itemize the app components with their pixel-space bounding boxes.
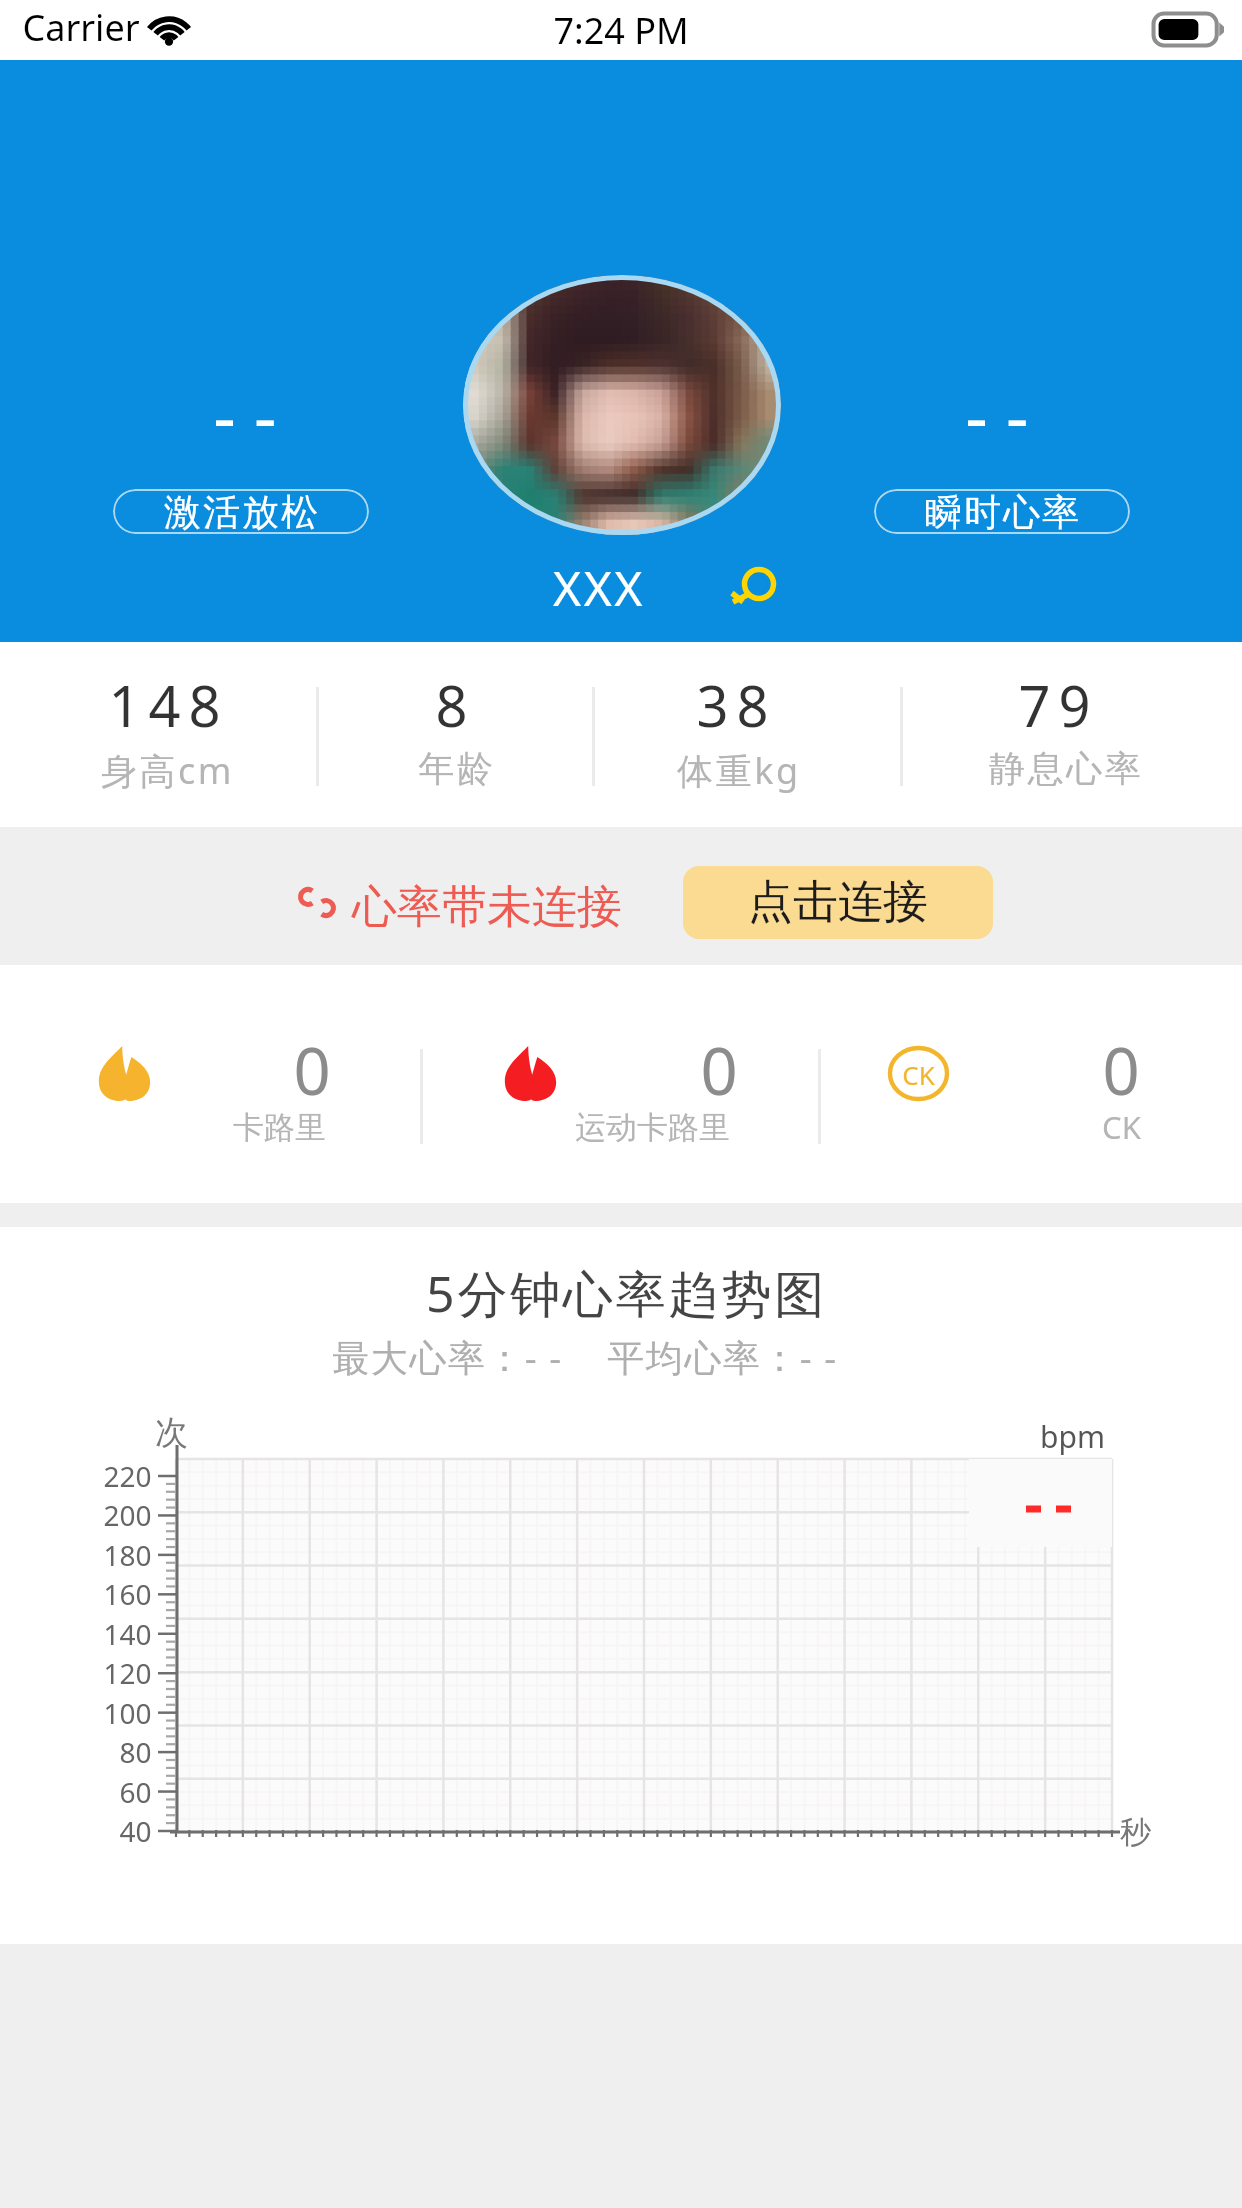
other: Wi-Fi	[146, 10, 192, 46]
staticText: 心率带未连接	[352, 879, 622, 936]
staticText: 220	[103, 1457, 152, 1495]
staticText: 148	[108, 667, 229, 743]
staticText: 秒	[1120, 1813, 1151, 1852]
other: Battery	[1152, 12, 1224, 47]
staticText: 80	[119, 1733, 152, 1771]
staticText: 120	[103, 1654, 152, 1692]
other: Gender	[726, 562, 780, 608]
button[interactable]: 瞬时心率	[874, 489, 1130, 534]
staticText: 瞬时心率	[924, 489, 1080, 534]
staticText: 40	[119, 1812, 152, 1850]
staticText: 点击连接	[748, 874, 928, 931]
button[interactable]: 点击连接	[683, 866, 993, 939]
staticText: 200	[103, 1496, 152, 1534]
other: Disconnected	[297, 885, 337, 919]
button[interactable]: 79	[914, 655, 1214, 805]
staticText: XXX	[553, 555, 645, 620]
button[interactable]: 38	[588, 655, 888, 805]
staticText: 79	[1018, 667, 1099, 743]
button[interactable]: 148	[16, 655, 316, 805]
staticText: 180	[103, 1536, 152, 1574]
staticText: 卡路里	[233, 1108, 326, 1147]
staticText: - -	[965, 367, 1029, 462]
staticText: Carrier	[22, 3, 140, 52]
button[interactable]: Profile photo	[463, 275, 781, 535]
staticText: 0	[700, 1026, 738, 1115]
staticText: 100	[103, 1694, 152, 1732]
staticText: - -	[213, 367, 277, 462]
staticText: 身高cm	[101, 746, 234, 795]
staticText: 5分钟心率趋势图	[426, 1259, 827, 1327]
staticText: 60	[119, 1773, 152, 1811]
staticText: CK	[1102, 1106, 1141, 1148]
staticText: 年龄	[417, 746, 494, 791]
staticText: 140	[103, 1615, 152, 1653]
button[interactable]: 激活放松	[113, 489, 369, 534]
staticText: 激活放松	[163, 489, 319, 534]
staticText: 8	[435, 667, 476, 743]
staticText: 160	[103, 1575, 152, 1613]
staticText: 最大心率：- - 平均心率：- -	[332, 1331, 838, 1382]
staticText: 次	[155, 1412, 188, 1454]
staticText: 7:24 PM	[553, 6, 689, 55]
staticText: 运动卡路里	[575, 1108, 730, 1147]
staticText: bpm	[1040, 1416, 1105, 1457]
staticText: 38	[696, 667, 777, 743]
staticText: 体重kg	[677, 746, 801, 795]
staticText: 0	[1102, 1026, 1140, 1115]
button[interactable]: 8	[304, 655, 604, 805]
staticText: 0	[293, 1026, 331, 1115]
staticText: 静息心率	[988, 746, 1142, 791]
staticText: CK	[902, 1057, 935, 1092]
